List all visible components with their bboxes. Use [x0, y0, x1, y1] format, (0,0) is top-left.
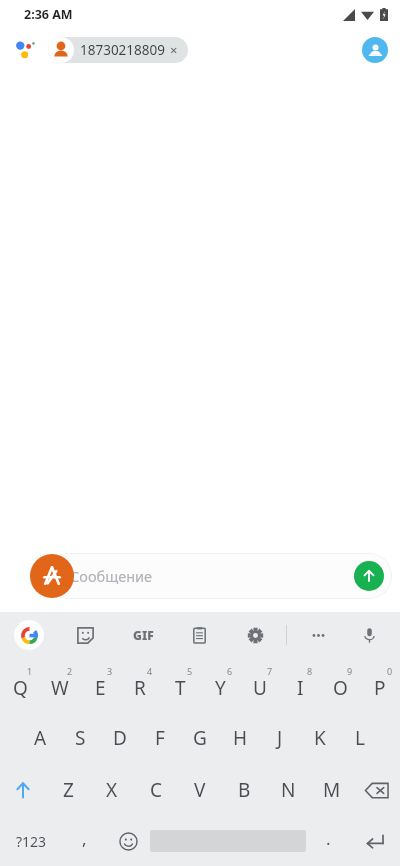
button[interactable]: O	[320, 658, 360, 712]
button[interactable]: Enter	[350, 816, 400, 866]
button[interactable]: Settings	[238, 618, 272, 652]
button[interactable]: F	[140, 712, 180, 764]
button[interactable]: Send	[354, 561, 384, 591]
button[interactable]: GIF	[126, 618, 160, 652]
staticText: R	[134, 675, 146, 701]
staticText: F	[155, 725, 165, 751]
staticText: U	[253, 675, 267, 701]
staticText: ,	[82, 827, 87, 850]
button[interactable]: J	[260, 712, 300, 764]
button[interactable]: Z	[46, 764, 90, 816]
staticText: A	[34, 725, 47, 751]
staticText: ×	[170, 41, 178, 59]
staticText: .	[326, 827, 331, 850]
staticText: Y	[215, 675, 226, 701]
staticText: Q	[13, 675, 28, 701]
button[interactable]: P	[360, 658, 400, 712]
staticText: 9	[347, 665, 353, 677]
staticText: 18730218809	[80, 41, 165, 59]
button[interactable]: S	[60, 712, 100, 764]
staticText: I	[297, 675, 304, 701]
button[interactable]: Shift	[0, 764, 46, 816]
staticText: V	[194, 777, 206, 803]
button[interactable]: G	[180, 712, 220, 764]
button[interactable]: ,	[62, 816, 106, 866]
staticText: 8	[307, 665, 313, 677]
staticText: G	[193, 725, 207, 751]
staticText: Сообщение	[70, 566, 153, 586]
staticText: O	[333, 675, 348, 701]
staticText: 7	[267, 665, 273, 677]
button[interactable]: Add contact	[362, 37, 388, 63]
staticText: X	[106, 777, 118, 803]
staticText: T	[175, 675, 186, 701]
button[interactable]: Сообщение	[46, 553, 392, 599]
staticText: B	[238, 777, 251, 803]
button[interactable]: B	[222, 764, 266, 816]
staticText: M	[323, 777, 341, 803]
staticText: 6	[227, 665, 233, 677]
staticText: Z	[63, 777, 74, 803]
button[interactable]: I	[280, 658, 320, 712]
staticText: 0	[387, 665, 393, 677]
button[interactable]: E	[80, 658, 120, 712]
staticText: W	[51, 675, 69, 701]
button[interactable]: Stickers	[68, 618, 102, 652]
staticText: N	[281, 777, 296, 803]
button[interactable]: L	[340, 712, 380, 764]
staticText: 2:36 AM	[24, 6, 73, 23]
staticText: P	[374, 675, 386, 701]
button[interactable]: X	[90, 764, 134, 816]
button[interactable]: R	[120, 658, 160, 712]
button[interactable]: Emoji	[106, 816, 150, 866]
button[interactable]: A	[20, 712, 60, 764]
button[interactable]: .	[306, 816, 350, 866]
staticText: L	[355, 725, 365, 751]
button[interactable]: 18730218809	[48, 37, 188, 63]
button[interactable]: ?123	[0, 816, 62, 866]
button[interactable]: K	[300, 712, 340, 764]
button[interactable]: V	[178, 764, 222, 816]
staticText: 2	[67, 665, 73, 677]
button[interactable]: Assistant	[12, 36, 40, 64]
staticText: 4	[147, 665, 153, 677]
staticText: J	[277, 725, 283, 751]
staticText: E	[95, 675, 106, 701]
button[interactable]: Clipboard	[182, 618, 216, 652]
button[interactable]: Backspace	[354, 764, 400, 816]
staticText: H	[233, 725, 248, 751]
button[interactable]: W	[40, 658, 80, 712]
button[interactable]: Q	[0, 658, 40, 712]
staticText: ?123	[16, 832, 47, 851]
staticText: GIF	[133, 627, 154, 643]
staticText: S	[75, 725, 86, 751]
button[interactable]: U	[240, 658, 280, 712]
staticText: K	[314, 725, 326, 751]
staticText: D	[113, 725, 127, 751]
button[interactable]: T	[160, 658, 200, 712]
button[interactable]: Google	[14, 620, 44, 650]
staticText: C	[150, 777, 163, 803]
button[interactable]: M	[310, 764, 354, 816]
button[interactable]: H	[220, 712, 260, 764]
button[interactable]: C	[134, 764, 178, 816]
button[interactable]: D	[100, 712, 140, 764]
button[interactable]: Apps	[30, 554, 74, 598]
button[interactable]: N	[266, 764, 310, 816]
staticText: 3	[107, 665, 113, 677]
staticText: 1	[27, 665, 33, 677]
button[interactable]: More	[301, 618, 335, 652]
staticText: 5	[187, 665, 193, 677]
button[interactable]: Space	[150, 816, 306, 866]
button[interactable]: Y	[200, 658, 240, 712]
button[interactable]: Voice input	[352, 618, 386, 652]
